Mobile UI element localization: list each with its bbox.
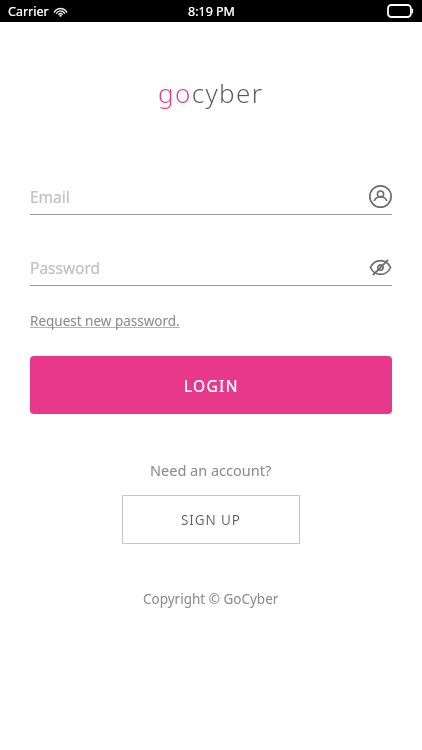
staticText: Carrier: [8, 3, 49, 20]
button[interactable]: LOGIN: [30, 356, 392, 414]
button[interactable]: Email: [30, 182, 392, 215]
button[interactable]: SIGN UP: [122, 495, 300, 544]
staticText: Need an account?: [150, 460, 272, 480]
staticText: Password: [30, 257, 101, 278]
staticText: SIGN UP: [181, 511, 241, 529]
staticText: gocyber: [158, 75, 264, 110]
staticText: LOGIN: [184, 375, 239, 396]
staticText: Copyright © GoCyber: [143, 590, 279, 608]
button[interactable]: Request new password.: [30, 312, 180, 330]
staticText: Request new password.: [30, 312, 180, 330]
other: Show password: [369, 256, 392, 279]
button[interactable]: Password: [30, 253, 392, 286]
staticText: 8:19 PM: [188, 3, 235, 20]
other: Account: [369, 185, 392, 208]
other: Battery: [388, 5, 414, 17]
staticText: Email: [30, 186, 70, 207]
